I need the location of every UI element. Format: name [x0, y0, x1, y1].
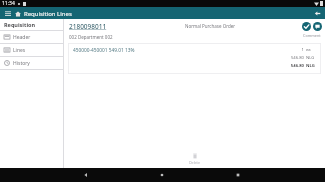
staticText: Requisition — [4, 21, 36, 28]
button[interactable]: Back — [81, 170, 91, 180]
button[interactable]: Approve — [302, 22, 311, 31]
staticText: Header — [13, 34, 31, 41]
button[interactable]: Back — [312, 8, 322, 18]
staticText: Requisition Lines — [24, 10, 72, 18]
button[interactable]: Header — [0, 31, 63, 43]
staticText: Lines — [13, 47, 26, 54]
button[interactable]: Recents — [233, 170, 243, 180]
staticText: Delete — [189, 160, 200, 165]
button[interactable]: Delete — [188, 152, 201, 166]
button[interactable]: 450000-450001 549.01 13% — [68, 43, 321, 74]
staticText: 2180098011 — [69, 22, 107, 31]
staticText: 546.80 — [290, 55, 304, 61]
staticText: 11:34 — [2, 0, 15, 7]
staticText: History — [13, 60, 30, 67]
button[interactable]: Home — [13, 9, 22, 18]
staticText: 002 Department 002 — [69, 34, 113, 40]
staticText: Normal Purchase Order — [185, 23, 236, 29]
staticText: NLG — [306, 55, 316, 61]
staticText: ea — [306, 47, 316, 53]
staticText: 1 — [290, 47, 304, 53]
staticText: 450000-450001 549.01 13% — [73, 47, 135, 54]
staticText: 546.80 — [290, 63, 304, 69]
staticText: Comment — [303, 33, 321, 38]
button[interactable]: Menu — [3, 9, 12, 18]
staticText: NLG — [306, 63, 316, 69]
button[interactable]: Lines — [0, 44, 63, 56]
button[interactable]: Comment — [313, 22, 322, 31]
button[interactable]: Home — [157, 170, 167, 180]
button[interactable]: History — [0, 57, 63, 69]
